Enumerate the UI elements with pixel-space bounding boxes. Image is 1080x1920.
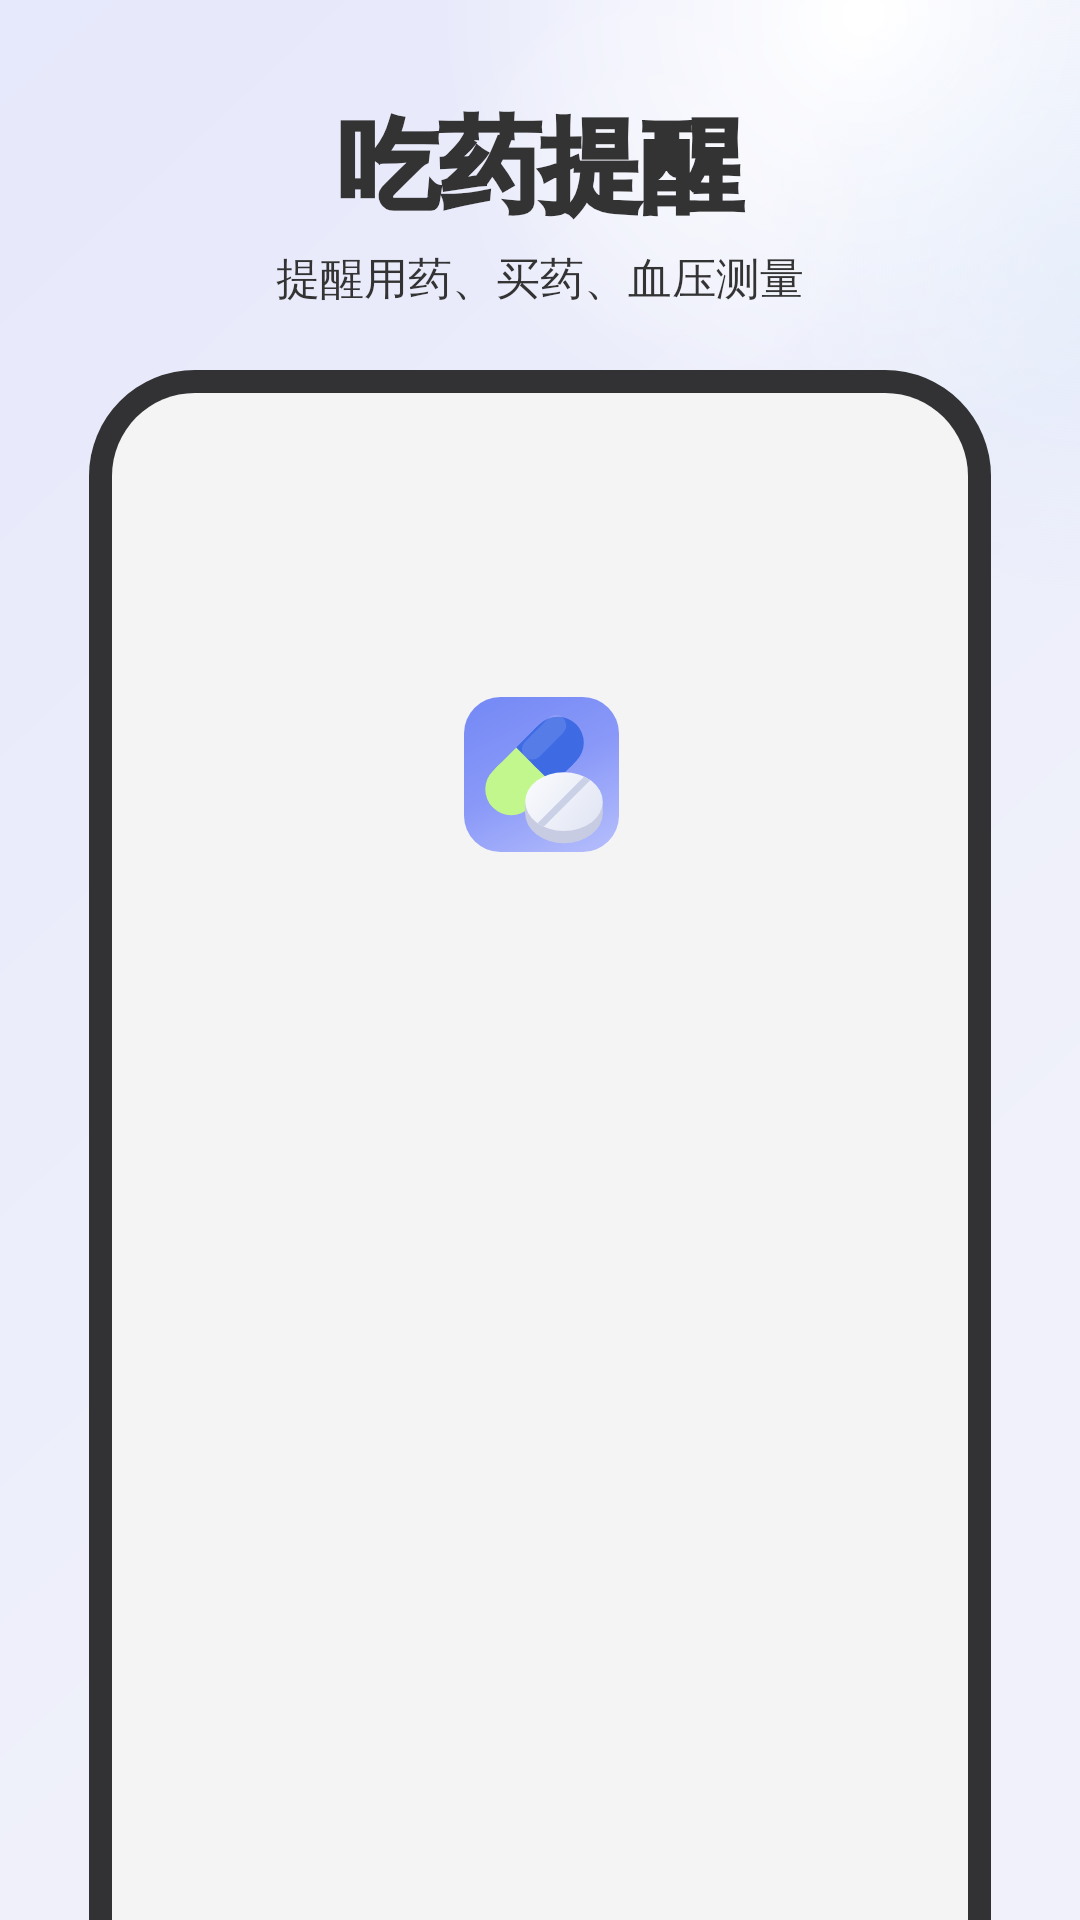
staticText: 吃药提醒 [0, 104, 1080, 231]
staticText: 提醒用药、买药、血压测量 [0, 252, 1080, 307]
button[interactable]: App preview [0, 0, 1080, 1920]
